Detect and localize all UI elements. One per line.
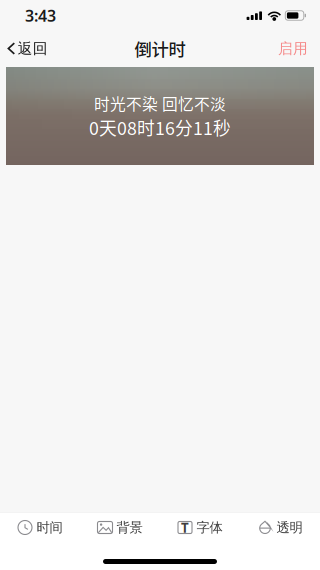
button[interactable]: 返回 bbox=[0, 34, 48, 62]
staticText: 3:43 bbox=[25, 5, 56, 26]
button[interactable]: 背景 bbox=[80, 507, 160, 547]
button[interactable]: 启用 bbox=[278, 34, 320, 62]
staticText: 0天08时16分11秒 bbox=[89, 115, 231, 140]
staticText: 返回 bbox=[18, 39, 48, 57]
staticText: 背景 bbox=[116, 519, 142, 536]
button[interactable]: 透明 bbox=[240, 507, 320, 547]
button[interactable]: T bbox=[160, 507, 240, 547]
staticText: 字体 bbox=[196, 519, 222, 536]
staticText: 时间 bbox=[36, 519, 62, 536]
staticText: T bbox=[181, 519, 189, 536]
staticText: 启用 bbox=[278, 39, 308, 57]
staticText: 倒计时 bbox=[134, 36, 185, 61]
staticText: 透明 bbox=[276, 519, 302, 536]
staticText: 时光不染 回忆不淡 bbox=[94, 92, 226, 115]
button[interactable]: 时间 bbox=[0, 507, 80, 547]
